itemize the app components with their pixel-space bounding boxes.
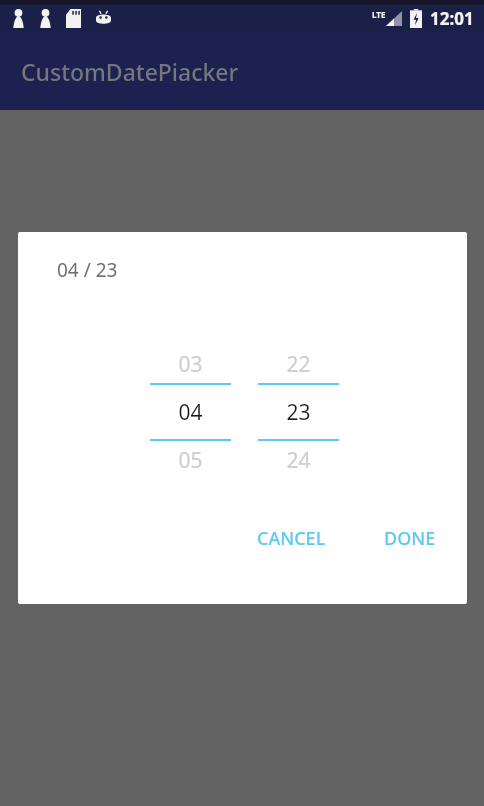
- button[interactable]: Month picker: [150, 345, 231, 479]
- staticText: 04 / 23: [57, 257, 118, 283]
- button[interactable]: DONE: [376, 518, 444, 559]
- staticText: 24: [286, 446, 311, 475]
- staticText: 04: [178, 398, 203, 427]
- staticText: CustomDatePiacker: [21, 56, 239, 87]
- staticText: LTE: [372, 9, 386, 20]
- staticText: 23: [286, 398, 311, 427]
- staticText: 03: [178, 350, 203, 379]
- button[interactable]: CANCEL: [249, 518, 334, 559]
- button[interactable]: Day picker: [258, 345, 339, 479]
- staticText: CANCEL: [257, 526, 326, 551]
- staticText: 12:01: [430, 7, 474, 30]
- staticText: 05: [178, 446, 203, 475]
- staticText: DONE: [384, 526, 436, 551]
- staticText: 22: [286, 350, 311, 379]
